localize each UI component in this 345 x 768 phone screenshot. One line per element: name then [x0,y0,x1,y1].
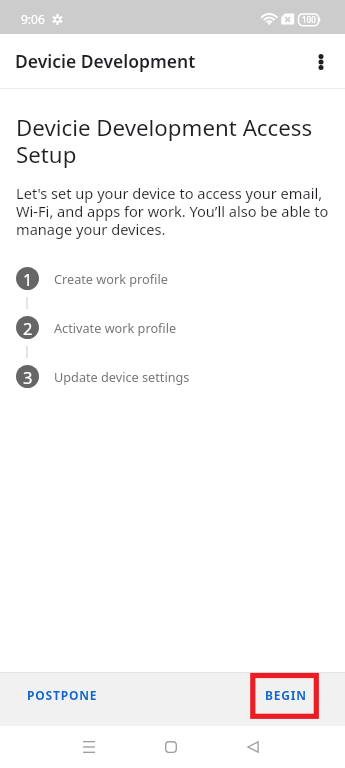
staticText: Update device settings [54,368,190,385]
staticText: BEGIN [265,687,307,703]
button[interactable]: BEGIN [249,679,323,711]
staticText: Devicie Development Access Setup [16,112,329,170]
staticText: Activate work profile [54,319,177,336]
staticText: Let's set up your device to access your … [16,183,329,240]
staticText: 3 [23,366,33,388]
staticText: 1 [23,268,33,290]
staticText: Create work profile [54,270,168,287]
button[interactable]: POSTPONE [11,679,114,711]
staticText: 100 [302,14,316,25]
staticText: 9:06 [21,11,45,27]
button[interactable]: Home [151,727,191,767]
button[interactable]: More options [302,43,340,81]
button[interactable]: Back [233,727,273,767]
staticText: 2 [23,317,33,339]
staticText: POSTPONE [27,687,98,703]
button[interactable]: Recent apps [69,727,109,767]
staticText: Devicie Development [15,49,196,73]
